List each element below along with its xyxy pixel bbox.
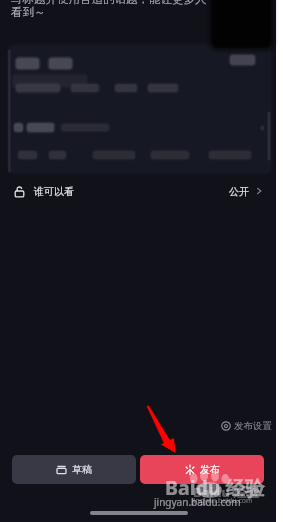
button[interactable]: 发布设置 xyxy=(216,416,277,436)
staticText: 发布 xyxy=(200,463,220,476)
button[interactable]: 草稿 xyxy=(12,455,136,484)
staticText: 发布设置 xyxy=(234,420,272,432)
staticText: 谁可以看 xyxy=(34,185,74,198)
staticText: 公开 xyxy=(229,185,249,198)
staticText: 写标题并使用合适的话题，能让更多人 xyxy=(11,0,207,6)
button[interactable]: 谁可以看 xyxy=(0,176,276,206)
staticText: jingyan.baidu.com xyxy=(154,495,241,509)
staticText: jingyan.baidu.com xyxy=(192,496,253,506)
button[interactable]: 发布 xyxy=(140,455,264,484)
staticText: Baidu 经验 xyxy=(193,483,260,501)
staticText: Baidu 经验 xyxy=(165,474,265,501)
staticText: 草稿 xyxy=(72,463,92,476)
staticText: 看到～ xyxy=(11,5,46,19)
